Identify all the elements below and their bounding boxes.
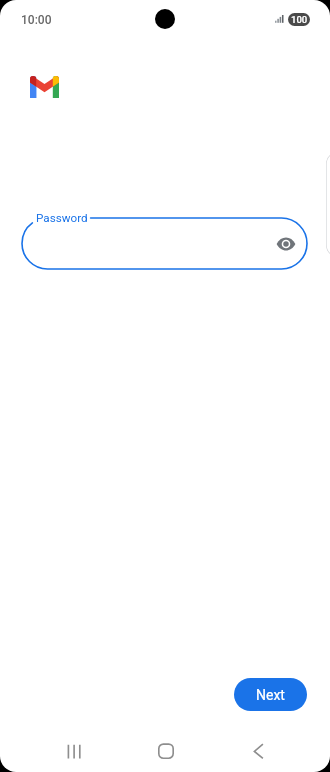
staticText: 100 <box>291 14 308 25</box>
button[interactable]: Recent apps <box>50 735 98 767</box>
staticText: Next <box>256 687 285 703</box>
button[interactable]: Show password <box>270 228 302 260</box>
button[interactable]: Next <box>234 678 307 711</box>
button[interactable]: Home <box>142 735 190 767</box>
staticText: 10:00 <box>21 13 52 27</box>
button[interactable]: Password <box>22 218 307 269</box>
staticText: Password <box>36 211 88 225</box>
button[interactable]: Back <box>238 735 286 767</box>
